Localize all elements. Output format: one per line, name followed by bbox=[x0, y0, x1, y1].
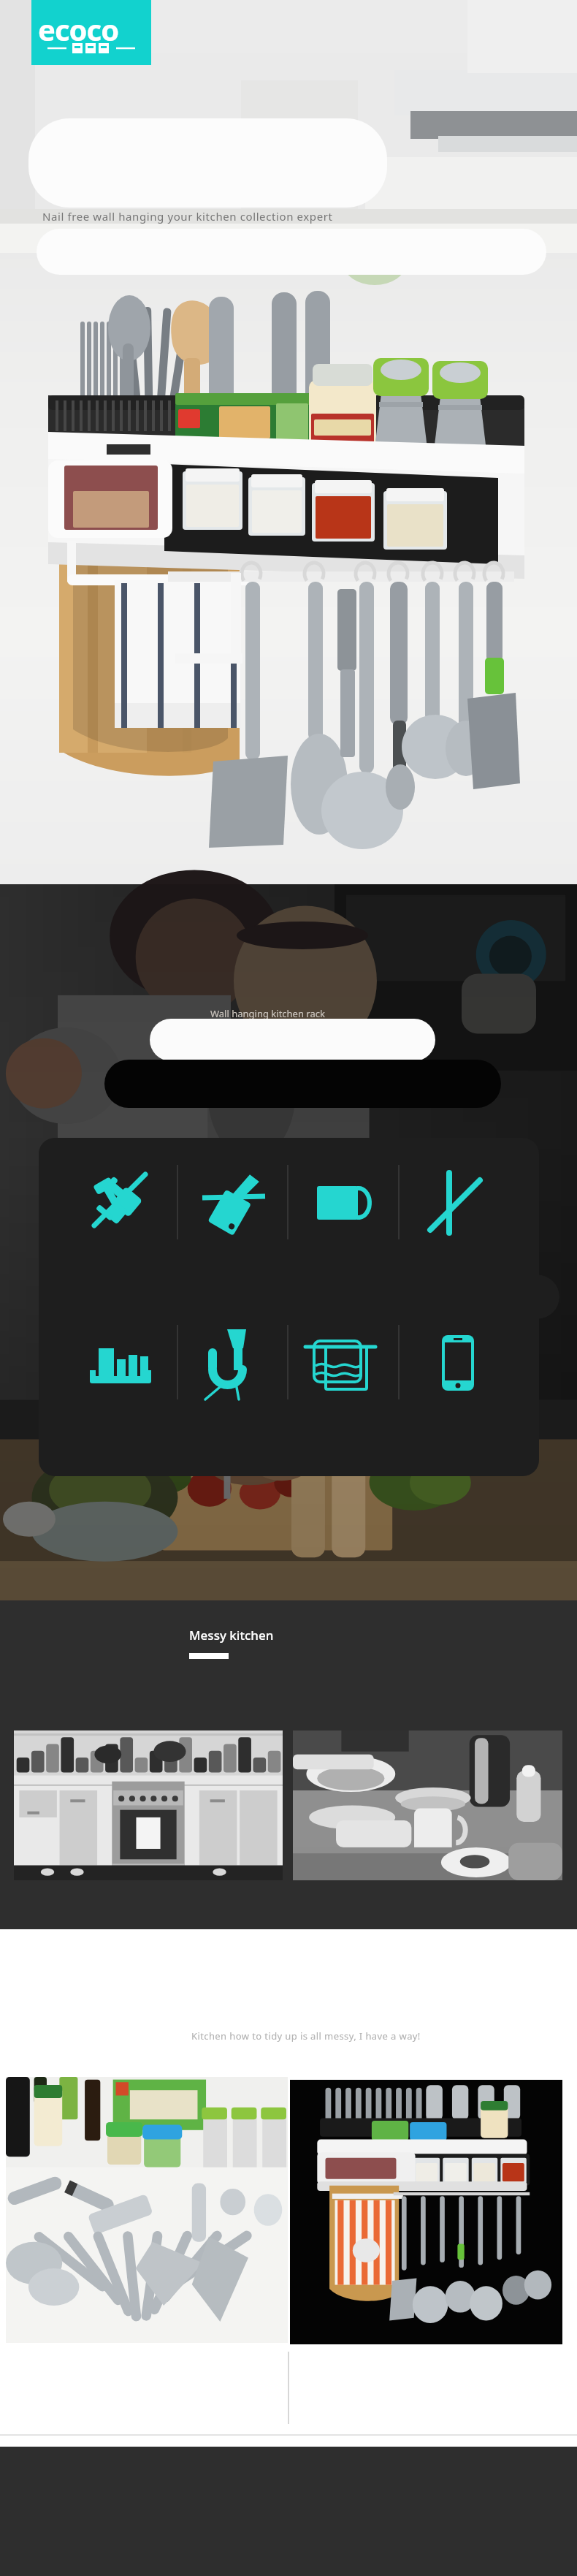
button[interactable]: Knife holder bbox=[195, 1166, 268, 1239]
staticText: Kitchen how to tidy up is all messy, I h… bbox=[191, 2029, 421, 2043]
button[interactable]: Hooks bbox=[195, 1326, 268, 1399]
button[interactable]: No drilling bbox=[83, 1166, 156, 1239]
staticText: Messy kitchen bbox=[189, 1627, 274, 1644]
button[interactable]: Chopstick holder bbox=[420, 1166, 493, 1239]
button[interactable]: Shelf storage bbox=[83, 1326, 156, 1399]
button[interactable]: Phone holder bbox=[420, 1326, 493, 1399]
button[interactable]: ecoco brand logo bbox=[31, 0, 151, 65]
button[interactable]: Cup holder bbox=[304, 1166, 377, 1239]
button[interactable]: Towel bar bbox=[304, 1326, 377, 1399]
staticText: Wall hanging kitchen rack bbox=[210, 1007, 325, 1020]
staticText: ecoco bbox=[38, 10, 119, 49]
staticText: Nail free wall hanging your kitchen coll… bbox=[42, 209, 333, 224]
